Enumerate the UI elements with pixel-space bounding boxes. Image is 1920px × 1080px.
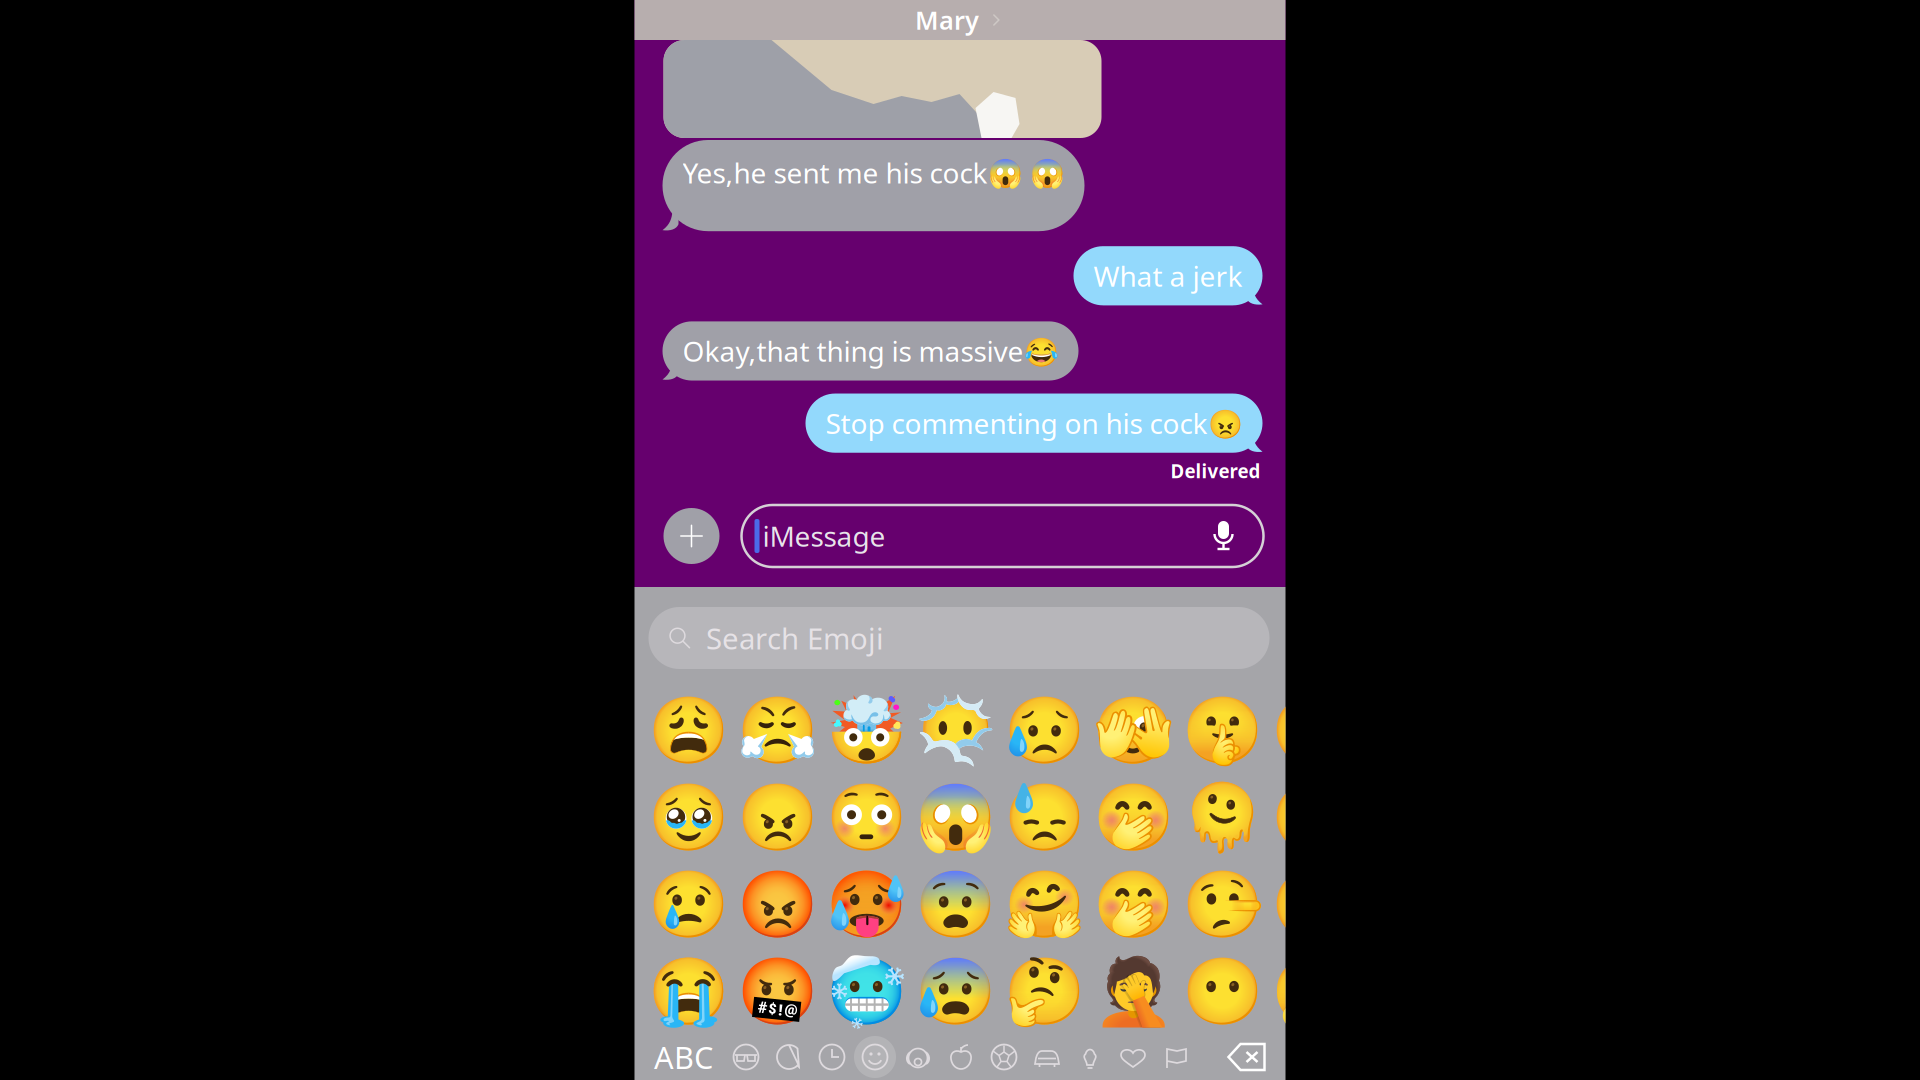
staticText: 🫣 (1093, 694, 1174, 768)
button[interactable]: Travel & places (1025, 1035, 1068, 1079)
staticText: Mary (915, 3, 979, 37)
staticText: iMessage (762, 517, 885, 555)
button[interactable]: Okay,that thing is massive😂 (662, 321, 1078, 381)
button[interactable]: Face with symbols on mouth (748, 963, 806, 1021)
staticText: Search Emoji (706, 618, 884, 657)
button[interactable]: Smileys & people (853, 1035, 896, 1079)
staticText: 🤫 (1182, 694, 1263, 768)
staticText: 😩 (648, 694, 729, 768)
staticText: 😮 (1271, 694, 1352, 768)
button[interactable]: Face with open mouth (1282, 702, 1340, 760)
button[interactable]: Hot face (837, 876, 895, 934)
button[interactable]: Delete (1221, 1035, 1273, 1079)
button[interactable]: Yawning face (1282, 963, 1340, 1021)
staticText: 🥵 (826, 868, 907, 942)
button[interactable]: Symbols (1111, 1035, 1154, 1079)
button[interactable]: Person facepalming (1104, 963, 1162, 1021)
staticText: 😲 (1271, 868, 1352, 942)
button[interactable]: Search Emoji (634, 587, 1285, 669)
button[interactable]: Stickers (767, 1035, 810, 1079)
button[interactable]: Yes,he sent me his cock😱 😱 (662, 140, 1084, 231)
staticText: 🤗 (1004, 868, 1085, 942)
staticText: 😰 (915, 955, 996, 1029)
staticText: 😥 (1004, 694, 1085, 768)
staticText: Yes,he sent me his cock😱 😱 (682, 154, 1064, 191)
button[interactable]: Fearful face (926, 876, 984, 934)
staticText: 😓 (1004, 781, 1085, 855)
button[interactable]: Weary face (659, 702, 717, 760)
button[interactable]: Anxious face with sweat (926, 963, 984, 1021)
staticText: 🥹 (648, 781, 729, 855)
staticText: 🫠 (1182, 781, 1263, 855)
button[interactable]: Crying face (659, 876, 717, 934)
button[interactable]: Stop commenting on his cock😠 (805, 393, 1262, 453)
button[interactable]: Add attachment (663, 508, 719, 564)
staticText: 🤦 (1093, 955, 1174, 1029)
button[interactable]: Memoji stickers (724, 1035, 767, 1079)
button[interactable]: Thinking face (1015, 963, 1073, 1021)
button[interactable]: Hushed face (1282, 789, 1340, 847)
button[interactable]: Cold face (837, 963, 895, 1021)
staticText: 😱 (915, 781, 996, 855)
button[interactable]: Face screaming in fear (926, 789, 984, 847)
staticText: 😢 (648, 868, 729, 942)
staticText: 😨 (915, 868, 996, 942)
button[interactable]: Lying face (1193, 876, 1251, 934)
staticText: ABC (654, 1037, 713, 1077)
button[interactable]: Face holding back tears (659, 789, 717, 847)
staticText: 😯 (1271, 781, 1352, 855)
button[interactable]: Flags (1154, 1035, 1197, 1079)
button[interactable]: Shushing face (1193, 702, 1251, 760)
staticText: Delivered (1170, 459, 1260, 483)
button[interactable]: Angry face (748, 789, 806, 847)
button[interactable]: Face in clouds (926, 702, 984, 760)
button[interactable]: Face with hand over mouth (1104, 876, 1162, 934)
staticText: 🤭 (1093, 868, 1174, 942)
button[interactable]: Astonished face (1282, 876, 1340, 934)
button[interactable]: Flushed face (837, 789, 895, 847)
button[interactable]: Melting face (1193, 789, 1251, 847)
button[interactable]: Face with peeking eye (1104, 702, 1162, 760)
button[interactable]: Downcast face with sweat (1015, 789, 1073, 847)
staticText: 🤯 (826, 694, 907, 768)
button[interactable]: Objects (1068, 1035, 1111, 1079)
button[interactable]: Activity (982, 1035, 1025, 1079)
staticText: 😠 (737, 781, 818, 855)
staticText: 🤔 (1004, 955, 1085, 1029)
button[interactable]: Mary (634, 0, 1285, 40)
button[interactable]: What a jerk (1073, 246, 1262, 305)
staticText: 🤬 (737, 955, 818, 1029)
button[interactable]: Exploding head (837, 702, 895, 760)
staticText: 😶‍🌫️ (915, 694, 996, 768)
button[interactable]: Recently used (810, 1035, 853, 1079)
staticText: 🥱 (1271, 955, 1352, 1029)
staticText: 😡 (737, 868, 818, 942)
staticText: 😤 (737, 694, 818, 768)
button[interactable]: Animals & nature (896, 1035, 939, 1079)
button[interactable]: Sad but relieved face (1015, 702, 1073, 760)
button[interactable]: ABC (652, 1035, 714, 1079)
staticText: 😳 (826, 781, 907, 855)
staticText: 🤭 (1093, 781, 1174, 855)
staticText: 😭 (648, 955, 729, 1029)
button[interactable]: Face with steam from nose (748, 702, 806, 760)
staticText: Stop commenting on his cock😠 (825, 404, 1242, 442)
staticText: 🤥 (1182, 868, 1263, 942)
button[interactable]: Loudly crying face (659, 963, 717, 1021)
staticText: 😶 (1182, 955, 1263, 1029)
button[interactable]: Food & drink (939, 1035, 982, 1079)
staticText: What a jerk (1093, 257, 1242, 294)
button[interactable]: Pouting face (748, 876, 806, 934)
button[interactable]: Face without mouth (1193, 963, 1251, 1021)
button[interactable]: Hugging face (1015, 876, 1073, 934)
staticText: 🥶 (826, 955, 907, 1029)
button[interactable]: Face with hand over mouth (1104, 789, 1162, 847)
staticText: Okay,that thing is massive😂 (682, 332, 1058, 370)
